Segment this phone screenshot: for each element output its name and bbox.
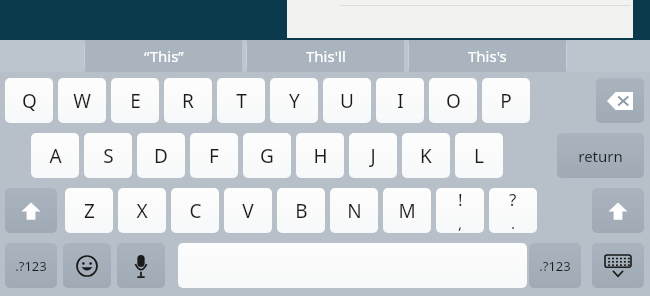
button[interactable]: return xyxy=(557,133,644,178)
staticText: W xyxy=(73,88,91,114)
staticText: This'll xyxy=(306,46,346,66)
button[interactable]: W xyxy=(58,78,106,123)
button[interactable]: Emoji xyxy=(63,243,111,288)
staticText: N xyxy=(347,198,362,224)
staticText: B xyxy=(295,198,308,224)
staticText: C xyxy=(189,198,202,224)
staticText: L xyxy=(474,143,484,169)
button[interactable]: .?123 xyxy=(529,243,581,288)
staticText: J xyxy=(370,143,376,169)
button[interactable]: ! xyxy=(436,188,484,233)
staticText: ! xyxy=(458,188,463,211)
button[interactable]: Backspace xyxy=(596,78,644,123)
staticText: H xyxy=(313,143,328,169)
staticText: Q xyxy=(22,88,37,114)
staticText: Z xyxy=(84,198,95,224)
staticText: A xyxy=(49,143,62,169)
button[interactable]: J xyxy=(349,133,397,178)
button[interactable]: K xyxy=(402,133,450,178)
button[interactable]: Q xyxy=(5,78,53,123)
button[interactable]: I xyxy=(376,78,424,123)
staticText: K xyxy=(420,143,432,169)
button[interactable]: .?123 xyxy=(5,243,57,288)
staticText: X xyxy=(136,198,148,224)
staticText: . xyxy=(511,213,516,233)
button[interactable]: C xyxy=(171,188,219,233)
staticText: , xyxy=(458,213,463,233)
staticText: ? xyxy=(509,188,517,211)
button[interactable]: “This” xyxy=(85,40,242,72)
button[interactable]: Hide keyboard xyxy=(592,243,644,288)
staticText: V xyxy=(242,198,254,224)
button[interactable]: F xyxy=(190,133,238,178)
button[interactable]: M xyxy=(383,188,431,233)
button[interactable]: Shift xyxy=(5,188,57,233)
staticText: P xyxy=(500,88,512,114)
button[interactable]: U xyxy=(323,78,371,123)
button[interactable]: Shift xyxy=(592,188,644,233)
button[interactable]: T xyxy=(217,78,265,123)
staticText: .?123 xyxy=(539,257,571,275)
button[interactable]: L xyxy=(455,133,503,178)
staticText: S xyxy=(103,143,114,169)
button[interactable]: A xyxy=(31,133,79,178)
staticText: Y xyxy=(289,88,300,114)
staticText: F xyxy=(209,143,219,169)
button[interactable]: Dictate xyxy=(117,243,165,288)
staticText: This's xyxy=(468,46,507,66)
staticText: O xyxy=(446,88,461,114)
button[interactable]: B xyxy=(277,188,325,233)
staticText: “This” xyxy=(144,46,184,66)
staticText: R xyxy=(182,88,194,114)
button[interactable]: R xyxy=(164,78,212,123)
staticText: D xyxy=(154,143,168,169)
staticText: T xyxy=(236,88,247,114)
staticText: I xyxy=(397,88,404,114)
button[interactable]: G xyxy=(243,133,291,178)
staticText: return xyxy=(578,146,623,166)
button[interactable]: This's xyxy=(409,40,566,72)
staticText: E xyxy=(130,88,141,114)
button[interactable]: N xyxy=(330,188,378,233)
staticText: U xyxy=(340,88,354,114)
button[interactable]: V xyxy=(224,188,272,233)
button[interactable]: Y xyxy=(270,78,318,123)
staticText: .?123 xyxy=(15,257,47,275)
button[interactable]: O xyxy=(429,78,477,123)
button[interactable]: S xyxy=(84,133,132,178)
button[interactable]: H xyxy=(296,133,344,178)
button[interactable]: ? xyxy=(489,188,537,233)
button[interactable]: Z xyxy=(65,188,113,233)
button[interactable]: E xyxy=(111,78,159,123)
button[interactable]: X xyxy=(118,188,166,233)
button[interactable]: D xyxy=(137,133,185,178)
staticText: G xyxy=(260,143,274,169)
button[interactable]: P xyxy=(482,78,530,123)
staticText: M xyxy=(398,198,416,224)
button[interactable]: This'll xyxy=(247,40,404,72)
